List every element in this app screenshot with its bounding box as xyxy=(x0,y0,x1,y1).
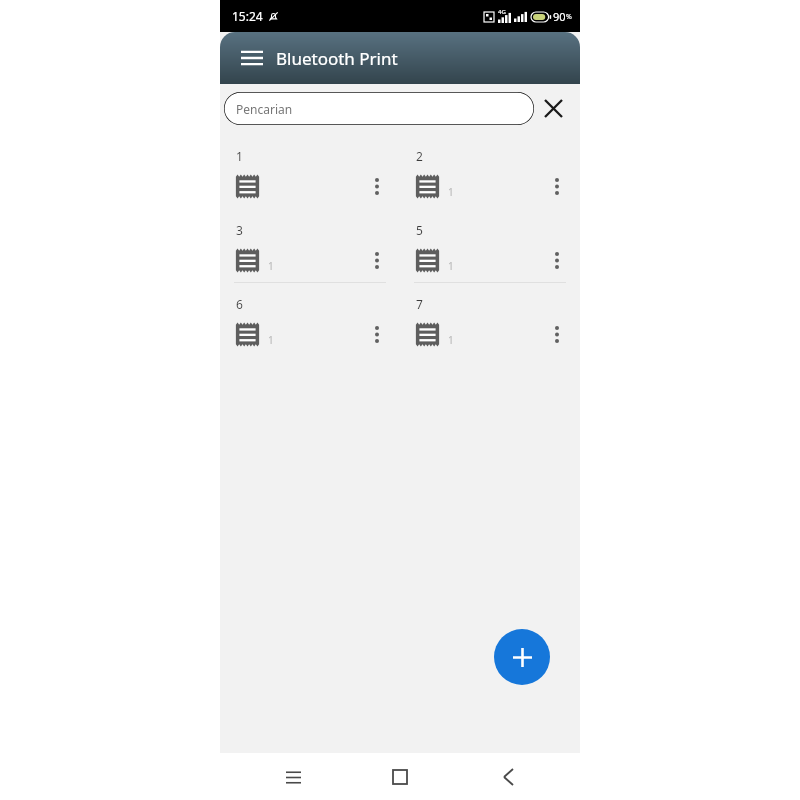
button[interactable]: More options xyxy=(364,314,390,354)
button[interactable]: More options xyxy=(364,166,390,206)
staticText: 1 xyxy=(268,333,274,347)
staticText: 1 xyxy=(448,185,454,199)
button[interactable]: Back xyxy=(473,755,543,799)
button[interactable]: Recent apps xyxy=(258,755,328,799)
staticText: Pencarian xyxy=(236,101,293,117)
staticText: 90 xyxy=(553,9,566,24)
button[interactable]: 2 xyxy=(400,140,580,214)
button[interactable]: Open navigation menu xyxy=(232,38,272,78)
button[interactable]: More options xyxy=(544,166,570,206)
button[interactable]: 3 xyxy=(220,214,400,288)
staticText: 1 xyxy=(236,148,243,164)
button[interactable]: Pencarian xyxy=(224,92,534,125)
staticText: 2 xyxy=(416,148,423,164)
button[interactable]: 7 xyxy=(400,288,580,362)
button[interactable]: More options xyxy=(544,314,570,354)
button[interactable]: Clear search xyxy=(534,88,572,128)
staticText: 1 xyxy=(448,333,454,347)
staticText: Bluetooth Print xyxy=(276,47,398,70)
button[interactable]: 1 xyxy=(220,140,400,214)
button[interactable]: More options xyxy=(364,240,390,280)
button[interactable]: More options xyxy=(544,240,570,280)
staticText: 6 xyxy=(236,296,243,312)
staticText: 3 xyxy=(236,222,243,238)
button[interactable]: 5 xyxy=(400,214,580,288)
staticText: % xyxy=(566,12,572,22)
button[interactable]: Add xyxy=(494,629,550,685)
staticText: 1 xyxy=(268,259,274,273)
button[interactable]: 6 xyxy=(220,288,400,362)
staticText: 1 xyxy=(448,259,454,273)
staticText: 4G xyxy=(498,8,506,16)
staticText: 5 xyxy=(416,222,423,238)
staticText: 7 xyxy=(416,296,423,312)
staticText: 15:24 xyxy=(232,8,263,24)
button[interactable]: Home xyxy=(365,755,435,799)
